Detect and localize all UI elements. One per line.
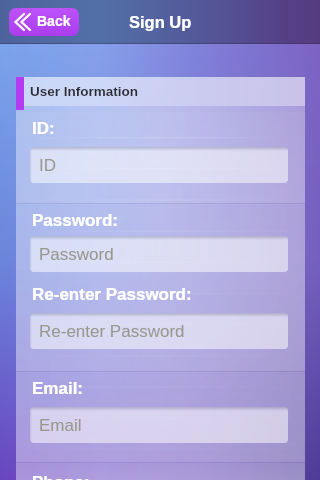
staticText: ID bbox=[39, 156, 56, 175]
staticText: Re-enter Password bbox=[39, 322, 185, 341]
staticText: Back bbox=[37, 13, 71, 29]
staticText: Email: bbox=[32, 379, 84, 398]
staticText: Password: bbox=[32, 211, 118, 230]
staticText: Phone: bbox=[32, 473, 90, 480]
button[interactable]: ID bbox=[30, 147, 288, 183]
staticText: Re-enter Password: bbox=[32, 285, 192, 304]
staticText: User Information bbox=[30, 84, 139, 99]
staticText: Password bbox=[39, 245, 114, 264]
button[interactable]: Re-enter Password bbox=[30, 313, 288, 349]
button[interactable]: Email bbox=[30, 407, 288, 443]
staticText: Email bbox=[39, 416, 82, 435]
button[interactable]: Back bbox=[9, 8, 79, 36]
staticText: Sign Up bbox=[129, 13, 192, 31]
staticText: ID: bbox=[32, 119, 55, 138]
button[interactable]: Password bbox=[30, 236, 288, 272]
